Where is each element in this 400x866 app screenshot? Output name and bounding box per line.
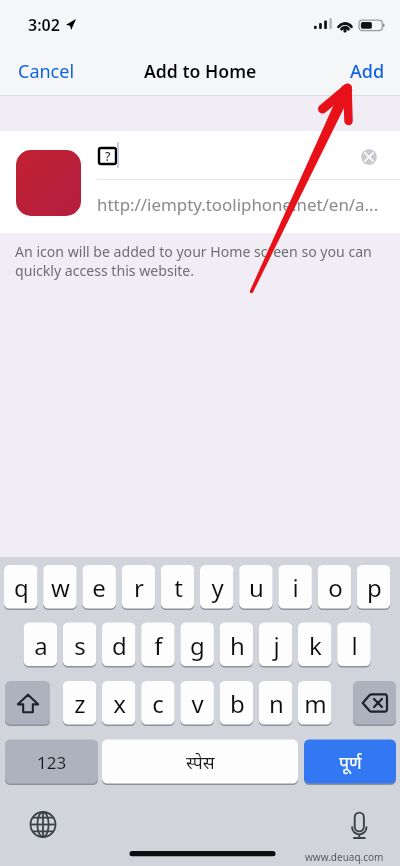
button[interactable]: k [298, 623, 332, 667]
staticText: q [14, 571, 29, 604]
staticText: Cancel [18, 59, 75, 84]
staticText: An icon will be added to your Home scree… [15, 242, 377, 280]
button[interactable]: i [278, 565, 312, 609]
staticText: d [112, 629, 127, 662]
staticText: Add to Home [144, 59, 257, 83]
staticText: b [230, 687, 245, 720]
button[interactable]: x [102, 681, 136, 725]
button[interactable]: m [298, 681, 332, 725]
staticText: v [191, 687, 204, 720]
staticText: g [190, 629, 205, 662]
button[interactable]: o [318, 565, 352, 609]
staticText: h [230, 629, 245, 662]
staticText: o [328, 571, 343, 604]
button[interactable]: q [4, 565, 38, 609]
button[interactable]: s [63, 623, 97, 667]
button[interactable]: 123 [5, 740, 98, 784]
staticText: 3:02 [28, 14, 60, 36]
button[interactable]: u [239, 565, 273, 609]
staticText: l [351, 629, 358, 662]
button[interactable]: स्पेस [102, 740, 298, 784]
button[interactable]: Dictation [346, 812, 372, 838]
button[interactable]: a [24, 623, 58, 667]
staticText: www.deuaq.com [305, 850, 384, 864]
staticText: स्पेस [186, 750, 215, 774]
staticText: Add [350, 59, 385, 84]
staticText: s [74, 629, 86, 662]
staticText: i [292, 571, 299, 604]
staticText: f [154, 629, 163, 662]
button[interactable]: e [82, 565, 116, 609]
button[interactable]: z [63, 681, 97, 725]
staticText: पूर्ण [339, 750, 362, 774]
button[interactable]: h [220, 623, 254, 667]
staticText: n [269, 687, 284, 720]
button[interactable]: f [141, 623, 175, 667]
button[interactable]: Clear text [361, 149, 377, 165]
staticText: p [367, 571, 382, 604]
button[interactable]: d [102, 623, 136, 667]
button[interactable]: p [357, 565, 391, 609]
staticText: 123 [37, 751, 67, 774]
staticText: z [74, 687, 86, 720]
staticText: j [273, 629, 280, 662]
button[interactable]: g [180, 623, 214, 667]
button[interactable]: l [337, 623, 371, 667]
button[interactable]: Cancel [0, 48, 91, 95]
button[interactable]: t [161, 565, 195, 609]
staticText: u [249, 571, 264, 604]
staticText: t [174, 571, 183, 604]
button[interactable]: c [141, 681, 175, 725]
staticText: http://iempty.tooliphone.net/en/a... [97, 193, 379, 216]
staticText: c [152, 687, 164, 720]
button[interactable]: j [259, 623, 293, 667]
button[interactable]: Add [334, 48, 400, 95]
button[interactable]: v [180, 681, 214, 725]
button[interactable]: Backspace [353, 681, 396, 725]
staticText: w [51, 571, 70, 604]
button[interactable]: b [220, 681, 254, 725]
staticText: x [113, 687, 126, 720]
staticText: ? [105, 148, 111, 164]
button[interactable]: y [200, 565, 234, 609]
staticText: a [34, 629, 48, 662]
button[interactable]: w [43, 565, 77, 609]
button[interactable]: Shift [5, 681, 50, 725]
staticText: r [134, 571, 144, 604]
button[interactable]: पूर्ण [304, 740, 396, 784]
staticText: k [309, 629, 322, 662]
staticText: y [211, 571, 224, 604]
button[interactable]: n [259, 681, 293, 725]
button[interactable]: Switch keyboard language [30, 812, 56, 838]
staticText: e [92, 571, 106, 604]
button[interactable]: r [122, 565, 156, 609]
staticText: m [304, 687, 327, 720]
